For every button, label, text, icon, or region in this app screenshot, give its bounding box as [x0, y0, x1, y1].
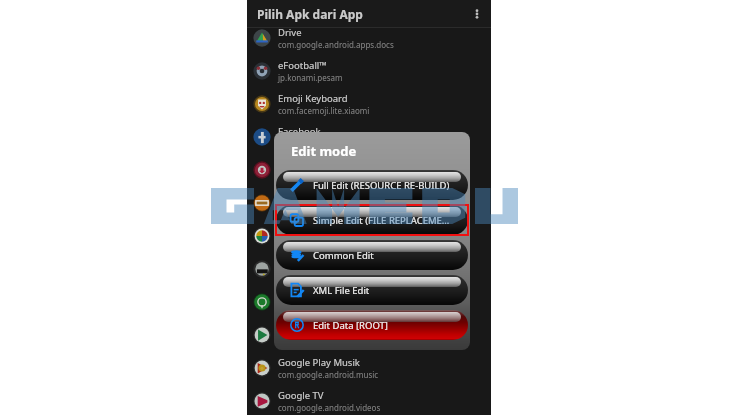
button[interactable]: File Downloader — [247, 153, 491, 186]
button[interactable]: Drive — [247, 21, 491, 54]
button[interactable]: Google Lens — [247, 252, 491, 285]
staticText: Google TV — [278, 389, 324, 402]
button[interactable]: XML File Edit — [276, 275, 468, 305]
staticText: Drive — [278, 26, 302, 39]
button[interactable]: Google Foto — [247, 219, 491, 252]
button[interactable]: Edit Data [ROOT] — [276, 310, 468, 340]
button[interactable]: Emoji Keyboard — [247, 87, 491, 120]
staticText: Google Lens — [278, 257, 334, 270]
staticText: Pilih Apk dari App — [257, 6, 363, 22]
staticText: com.miui.securitycenter — [278, 204, 369, 215]
staticText: Facebook — [278, 125, 321, 138]
staticText: com.google.android.videos — [278, 402, 381, 413]
button[interactable]: eFootball™ — [247, 54, 491, 87]
staticText: Common Edit — [313, 249, 374, 262]
button[interactable]: More options — [468, 5, 486, 23]
staticText: Google Play Store — [278, 323, 357, 336]
staticText: com.facemoji.lite.xiaomi — [278, 105, 370, 116]
staticText: Simple Edit (FILE REPLACEME… — [313, 214, 450, 227]
staticText: Edit mode — [291, 142, 357, 160]
button[interactable]: Facebook — [247, 120, 491, 153]
staticText: eFootball™ — [278, 59, 327, 72]
staticText: Emoji Keyboard — [278, 92, 348, 105]
staticText: Game Turbo — [278, 191, 334, 204]
button[interactable]: Google Play Store — [247, 318, 491, 351]
staticText: com.facebook.katana — [278, 138, 359, 149]
staticText: File Downloader — [278, 158, 351, 171]
staticText: Edit Data [ROOT] — [313, 319, 388, 332]
staticText: com.google.android.apps.nbu.paisa.user — [278, 303, 432, 314]
staticText: Google Pay — [278, 290, 329, 303]
button[interactable]: Common Edit — [276, 240, 468, 270]
staticText: com.dv.adm — [278, 171, 324, 182]
staticText: Full Edit (RESOURCE RE-BUILD) — [313, 179, 450, 192]
staticText: com.google.android.apps.photos — [278, 237, 403, 248]
staticText: jp.konami.pesam — [278, 72, 343, 83]
button[interactable]: Google Pay — [247, 285, 491, 318]
button[interactable]: Game Turbo — [247, 186, 491, 219]
staticText: com.android.vending — [278, 336, 359, 347]
staticText: com.google.android.music — [278, 369, 379, 380]
staticText: XML File Edit — [313, 284, 370, 297]
button[interactable]: Google TV — [247, 384, 491, 415]
staticText: Google Foto — [278, 224, 333, 237]
button[interactable]: Full Edit (RESOURCE RE-BUILD) — [276, 170, 468, 200]
staticText: com.google.android.apps.docs — [278, 39, 394, 50]
staticText: Google Play Musik — [278, 356, 360, 369]
button[interactable]: Simple Edit (FILE REPLACEME… — [276, 205, 468, 235]
staticText: com.google.ar.lens — [278, 270, 349, 281]
button[interactable]: Google Play Musik — [247, 351, 491, 384]
